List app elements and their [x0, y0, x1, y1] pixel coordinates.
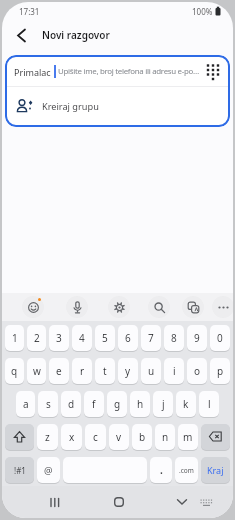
button[interactable] — [108, 296, 130, 318]
button[interactable] — [108, 486, 130, 518]
button[interactable]: . — [150, 457, 172, 483]
button[interactable]: k — [176, 391, 196, 417]
button[interactable]: q — [5, 358, 24, 384]
button[interactable]: 0 — [210, 325, 230, 351]
staticText: Primalac — [14, 66, 51, 78]
button[interactable]: b — [132, 424, 152, 450]
button[interactable]: 6 — [118, 325, 138, 351]
button[interactable]: h — [130, 391, 150, 417]
button[interactable] — [22, 296, 44, 318]
staticText: Kraj — [207, 464, 224, 476]
staticText: 100% — [192, 6, 213, 17]
button[interactable] — [201, 424, 230, 450]
button[interactable] — [44, 486, 66, 518]
staticText: . — [160, 463, 163, 477]
button[interactable]: Kreiraj grupu — [7, 87, 228, 125]
staticText: 6 — [125, 331, 131, 345]
button[interactable]: 4 — [72, 325, 92, 351]
button[interactable] — [196, 494, 216, 512]
button[interactable]: y — [118, 358, 138, 384]
staticText: s — [46, 397, 51, 411]
staticText: m — [183, 430, 193, 444]
button[interactable]: r — [72, 358, 92, 384]
button[interactable]: z — [37, 424, 58, 450]
button[interactable]: 3 — [49, 325, 69, 351]
staticText: t — [103, 364, 107, 378]
staticText: 2 — [34, 331, 40, 345]
staticText: n — [162, 430, 169, 444]
staticText: Kreiraj grupu — [42, 100, 99, 113]
button[interactable]: Primalac — [7, 57, 228, 86]
staticText: j — [162, 397, 165, 411]
staticText: g — [114, 397, 121, 411]
button[interactable] — [148, 296, 170, 318]
button[interactable]: 7 — [141, 325, 161, 351]
button[interactable]: f — [84, 391, 104, 417]
staticText: 0 — [217, 331, 223, 345]
staticText: l — [208, 397, 211, 411]
staticText: u — [148, 364, 155, 378]
staticText: 1 — [12, 331, 18, 345]
button[interactable]: d — [61, 391, 81, 417]
button[interactable]: p — [210, 358, 230, 384]
button[interactable] — [5, 424, 34, 450]
button[interactable]: u — [141, 358, 161, 384]
button[interactable] — [212, 296, 233, 318]
staticText: w — [33, 364, 41, 378]
button[interactable]: 2 — [27, 325, 46, 351]
staticText: k — [183, 397, 189, 411]
button[interactable]: j — [153, 391, 173, 417]
staticText: 7 — [148, 331, 154, 345]
staticText: z — [45, 430, 50, 444]
button[interactable]: e — [49, 358, 69, 384]
button[interactable] — [182, 296, 204, 318]
button[interactable]: Kraj — [201, 457, 230, 483]
button[interactable]: .com — [175, 457, 198, 483]
staticText: d — [68, 397, 75, 411]
staticText: a — [23, 397, 29, 411]
button[interactable]: c — [85, 424, 106, 450]
button[interactable]: m — [178, 424, 198, 450]
staticText: 3 — [56, 331, 62, 345]
staticText: v — [116, 430, 122, 444]
staticText: o — [194, 364, 201, 378]
staticText: 9 — [194, 331, 200, 345]
staticText: i — [173, 364, 176, 378]
staticText: f — [92, 397, 96, 411]
button[interactable]: w — [27, 358, 46, 384]
staticText: r — [80, 364, 85, 378]
staticText: y — [125, 364, 131, 378]
staticText: e — [56, 364, 62, 378]
button[interactable] — [9, 23, 33, 47]
button[interactable]: s — [38, 391, 58, 417]
button[interactable]: a — [16, 391, 35, 417]
button[interactable]: !#1 — [5, 457, 34, 483]
button[interactable]: i — [164, 358, 184, 384]
button[interactable]: 1 — [5, 325, 24, 351]
button[interactable]: v — [109, 424, 129, 450]
button[interactable]: n — [155, 424, 175, 450]
button[interactable]: g — [107, 391, 127, 417]
button[interactable] — [171, 486, 193, 518]
button[interactable]: o — [187, 358, 207, 384]
staticText: .com — [179, 466, 194, 475]
button[interactable]: 5 — [95, 325, 115, 351]
button[interactable]: x — [61, 424, 82, 450]
button[interactable]: 8 — [164, 325, 184, 351]
staticText: 17:31 — [19, 6, 40, 17]
button[interactable]: l — [199, 391, 219, 417]
button[interactable]: @ — [37, 457, 60, 483]
staticText: 4 — [79, 331, 85, 345]
staticText: 8 — [171, 331, 177, 345]
staticText: c — [93, 430, 98, 444]
staticText: b — [139, 430, 146, 444]
staticText: @ — [44, 464, 53, 477]
button[interactable]: t — [95, 358, 115, 384]
button[interactable] — [66, 296, 88, 318]
button[interactable]: 9 — [187, 325, 207, 351]
staticText: p — [217, 364, 224, 378]
staticText: Novi razgovor — [42, 28, 110, 42]
staticText: !#1 — [14, 465, 26, 476]
staticText: Upišite ime, broj telefona ili adresu e-… — [58, 66, 202, 77]
